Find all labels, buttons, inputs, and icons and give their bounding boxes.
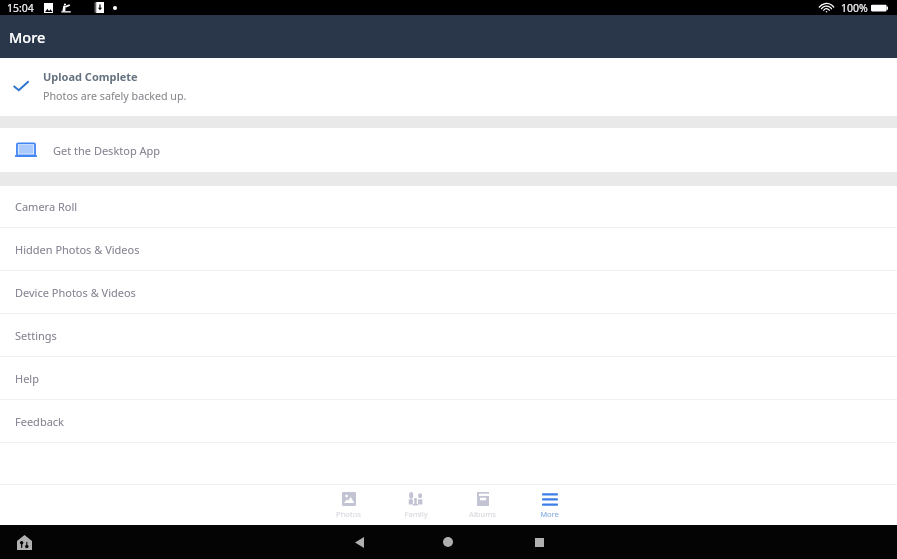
staticText: Albums <box>469 509 496 519</box>
staticText: More <box>9 27 46 47</box>
button[interactable]: Hidden Photos & Videos <box>0 228 897 270</box>
staticText: Hidden Photos & Videos <box>15 242 140 257</box>
button[interactable]: Feedback <box>0 400 897 442</box>
staticText: Upload Complete <box>43 69 138 84</box>
button[interactable]: Home <box>438 532 458 552</box>
button[interactable]: More <box>516 485 583 525</box>
staticText: Help <box>15 371 39 386</box>
staticText: More <box>540 509 559 519</box>
button[interactable]: Camera Roll <box>0 186 897 227</box>
staticText: 100% <box>841 1 868 15</box>
staticText: Device Photos & Videos <box>15 285 136 300</box>
staticText: Settings <box>15 328 57 343</box>
button[interactable]: Help <box>0 357 897 399</box>
staticText: Get the Desktop App <box>53 143 161 158</box>
staticText: Family <box>404 509 428 519</box>
button[interactable]: Settings <box>0 314 897 356</box>
staticText: Photos are safely backed up. <box>43 89 187 104</box>
button[interactable]: Back <box>349 532 369 552</box>
button[interactable]: Device Photos & Videos <box>0 271 897 313</box>
button[interactable]: Photos <box>315 485 382 525</box>
button[interactable]: Recents <box>529 532 549 552</box>
staticText: Feedback <box>15 414 64 429</box>
staticText: Photos <box>336 509 361 519</box>
button[interactable]: Gallery shortcut <box>13 531 35 553</box>
button[interactable]: Albums <box>449 485 516 525</box>
staticText: Camera Roll <box>15 199 78 214</box>
button[interactable]: Get the Desktop App <box>0 128 897 172</box>
staticText: 15:04 <box>7 1 34 15</box>
button[interactable]: Family <box>382 485 449 525</box>
button[interactable]: Upload Complete <box>0 58 897 116</box>
